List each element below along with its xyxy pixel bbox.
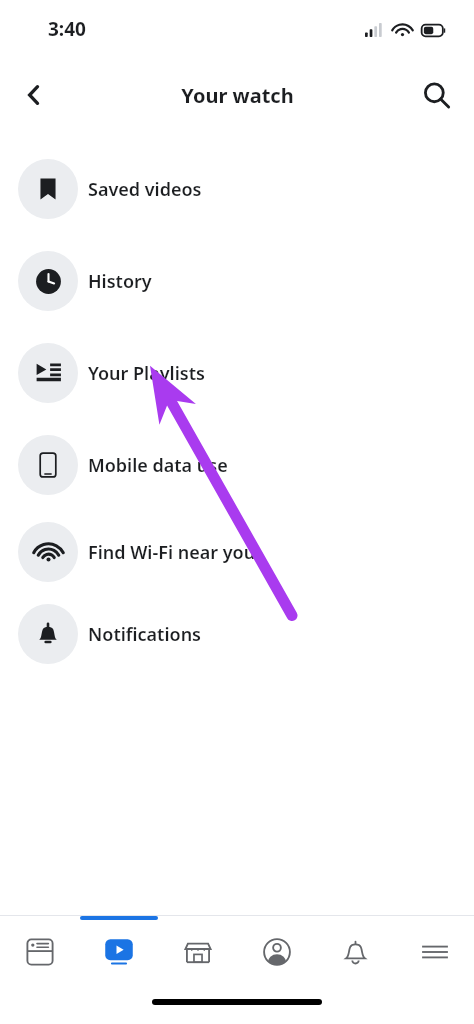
button[interactable]: Marketplace (158, 916, 237, 988)
button[interactable]: Notifications (316, 916, 395, 988)
staticText: Your watch (181, 82, 294, 109)
staticText: Saved videos (88, 177, 202, 202)
staticText: Find Wi-Fi near you (88, 540, 256, 565)
button[interactable]: Menu (395, 916, 474, 988)
button[interactable]: Saved videos (0, 143, 474, 235)
button[interactable]: Profile (237, 916, 316, 988)
button[interactable]: Find Wi-Fi near you (0, 511, 474, 593)
button[interactable]: Back (8, 69, 60, 121)
staticText: Notifications (88, 622, 201, 647)
staticText: Mobile data use (88, 453, 228, 478)
button[interactable]: News Feed (0, 916, 79, 988)
button[interactable]: Search (410, 69, 462, 121)
button[interactable]: Mobile data use (0, 419, 474, 511)
staticText: 3:40 (48, 16, 86, 42)
button[interactable]: Notifications (0, 593, 474, 675)
staticText: Your Playlists (88, 361, 205, 386)
button[interactable]: Watch (79, 916, 158, 988)
button[interactable]: History (0, 235, 474, 327)
staticText: History (88, 269, 152, 294)
button[interactable]: Your Playlists (0, 327, 474, 419)
